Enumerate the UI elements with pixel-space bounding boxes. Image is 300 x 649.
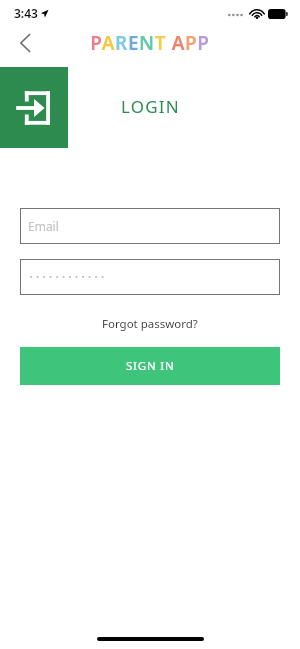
button[interactable]: Login bbox=[0, 67, 68, 148]
staticText: LOGIN bbox=[121, 95, 180, 118]
button[interactable]: Back bbox=[8, 26, 42, 60]
staticText: Forgot password? bbox=[102, 316, 198, 332]
button[interactable]: SIGN IN bbox=[20, 347, 280, 385]
staticText: SIGN IN bbox=[126, 358, 175, 374]
staticText: Email bbox=[28, 218, 59, 234]
staticText: 3:43 bbox=[14, 5, 38, 21]
button[interactable] bbox=[20, 259, 280, 295]
button[interactable]: Email bbox=[20, 208, 280, 244]
button[interactable]: Forgot password? bbox=[96, 313, 204, 335]
staticText: PARENT APP bbox=[90, 30, 210, 56]
